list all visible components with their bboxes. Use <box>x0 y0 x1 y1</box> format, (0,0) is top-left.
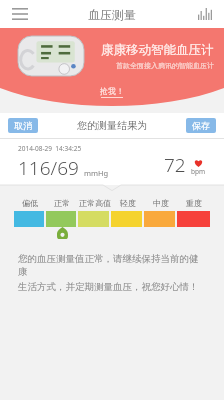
button[interactable]: 抢我！ <box>100 86 124 98</box>
staticText: 康康移动智能血压计 <box>101 42 214 58</box>
staticText: 正常高值 <box>79 198 111 208</box>
staticText: 偏低 <box>22 198 38 208</box>
staticText: 72 <box>164 152 186 178</box>
button[interactable]: 取消 <box>8 118 38 133</box>
staticText: 重度 <box>186 198 202 208</box>
button[interactable]: Menu <box>6 0 34 28</box>
staticText: 正常 <box>54 198 70 208</box>
staticText: 血压测量 <box>88 7 136 22</box>
staticText: 2014-08-29 14:34:25 <box>18 144 82 153</box>
staticText: 中度 <box>153 198 169 208</box>
staticText: 116/69 <box>18 155 79 181</box>
staticText: 您的血压测量值正常，请继续保持当前的健康 <box>18 253 206 277</box>
staticText: 生活方式，并定期测量血压，祝您好心情！ <box>18 281 199 293</box>
staticText: 您的测量结果为 <box>77 119 147 132</box>
staticText: 保存 <box>192 120 210 131</box>
button[interactable]: 保存 <box>186 118 216 133</box>
staticText: mmHg <box>84 168 109 178</box>
staticText: 轻度 <box>120 198 136 208</box>
staticText: 首款全面接入腾讯的智能血压计 <box>116 61 214 70</box>
staticText: 取消 <box>14 120 32 131</box>
button[interactable]: History chart <box>192 1 218 27</box>
staticText: 抢我！ <box>100 86 124 96</box>
staticText: bpm <box>191 167 206 176</box>
